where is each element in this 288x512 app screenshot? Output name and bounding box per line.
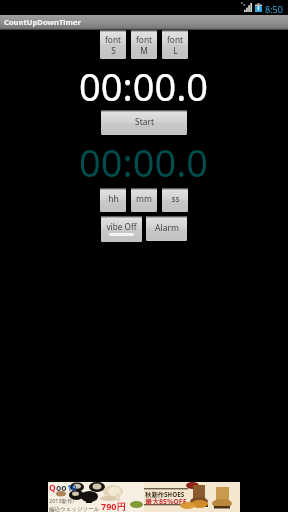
button[interactable]: font: [131, 30, 157, 59]
staticText: ss: [171, 193, 180, 205]
staticText: font: [167, 34, 183, 45]
staticText: 最大85%OFF: [145, 497, 187, 507]
button[interactable]: hh: [100, 188, 126, 212]
staticText: font: [136, 34, 152, 45]
staticText: 8:50: [265, 3, 283, 15]
other: Signal strength: [244, 3, 252, 12]
button[interactable]: vibe Off: [101, 216, 142, 242]
other: Mobile data: [241, 2, 245, 6]
staticText: 790円: [101, 500, 126, 512]
other: Battery: [255, 3, 262, 12]
staticText: 10: [67, 482, 77, 494]
staticText: 2013新作!: [49, 497, 75, 505]
staticText: oo: [56, 482, 67, 494]
button[interactable]: font: [162, 30, 188, 59]
staticText: mm: [136, 193, 152, 205]
staticText: 00:00.0: [79, 136, 209, 188]
staticText: Start: [135, 116, 154, 127]
staticText: 00:00.0: [79, 60, 209, 112]
staticText: font: [105, 34, 121, 45]
staticText: hh: [108, 193, 119, 205]
staticText: 秋新作SHOES: [145, 490, 185, 499]
button[interactable]: Alarm: [146, 216, 187, 241]
button[interactable]: font: [100, 30, 126, 59]
staticText: Alarm: [155, 222, 179, 234]
button[interactable]: mm: [131, 188, 157, 212]
staticText: S: [111, 45, 116, 56]
button[interactable]: ss: [162, 188, 188, 212]
staticText: CountUpDownTimer: [4, 17, 81, 27]
button[interactable]: Start: [101, 110, 187, 135]
staticText: vibe Off: [106, 221, 137, 232]
staticText: M: [140, 45, 148, 56]
staticText: 編込ウェッジソール: [49, 506, 100, 512]
staticText: Q: [49, 482, 56, 494]
button[interactable]: Advertisement: [48, 482, 240, 512]
staticText: L: [173, 45, 178, 56]
